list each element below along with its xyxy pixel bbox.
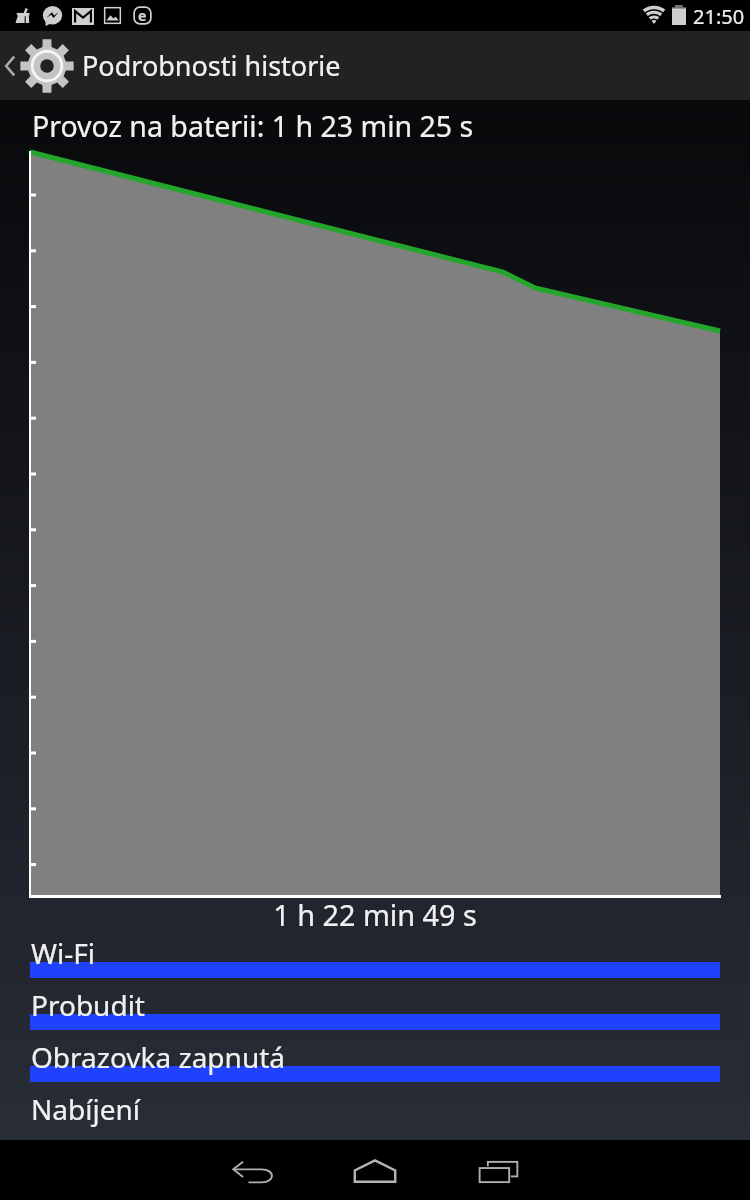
button[interactable]: Home <box>325 1140 425 1200</box>
staticText: Nabíjení <box>31 1090 140 1128</box>
staticText: Wi-Fi <box>31 934 96 972</box>
button[interactable]: Recent apps <box>448 1140 548 1200</box>
staticText: 21:50 <box>693 3 745 30</box>
staticText: Provoz na baterii: 1 h 23 min 25 s <box>32 107 474 146</box>
button[interactable]: Probudit <box>0 988 750 1040</box>
staticText: Podrobnosti historie <box>82 47 341 84</box>
button[interactable]: Back <box>202 1140 302 1200</box>
staticText: 1 h 22 min 49 s <box>0 895 750 934</box>
staticText: Probudit <box>31 986 145 1024</box>
button[interactable]: Wi-Fi <box>0 936 750 988</box>
staticText: Obrazovka zapnutá <box>31 1038 286 1076</box>
button[interactable]: Navigate up <box>0 31 74 100</box>
staticText: e <box>138 6 147 25</box>
button[interactable]: Obrazovka zapnutá <box>0 1040 750 1092</box>
button[interactable]: Nabíjení <box>0 1092 750 1144</box>
